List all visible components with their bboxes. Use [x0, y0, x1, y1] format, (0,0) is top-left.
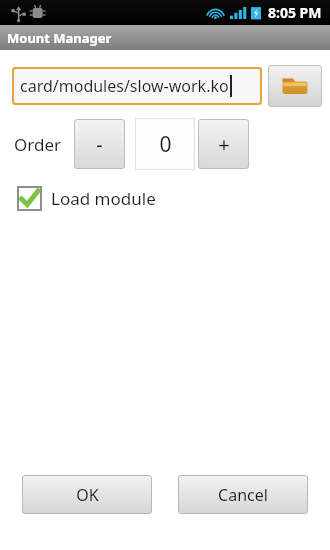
staticText: Order [14, 133, 62, 156]
button[interactable]: Load module [17, 186, 156, 211]
button[interactable]: - [74, 119, 125, 169]
button[interactable]: OK [22, 475, 152, 514]
button[interactable]: card/modules/slow-work.ko [14, 69, 260, 103]
staticText: 8:05 PM [268, 3, 322, 22]
staticText: OK [76, 484, 99, 506]
button[interactable]: 0 [135, 118, 195, 170]
staticText: Mount Manager [7, 29, 112, 47]
staticText: Cancel [218, 484, 268, 506]
staticText: + [218, 131, 230, 158]
staticText: - [96, 131, 103, 158]
button[interactable]: Browse files [268, 65, 322, 107]
button[interactable]: Cancel [178, 475, 308, 514]
button[interactable]: + [198, 119, 249, 169]
staticText: card/modules/slow-work.ko [20, 75, 229, 97]
staticText: Load module [51, 187, 156, 210]
staticText: 0 [159, 130, 172, 159]
